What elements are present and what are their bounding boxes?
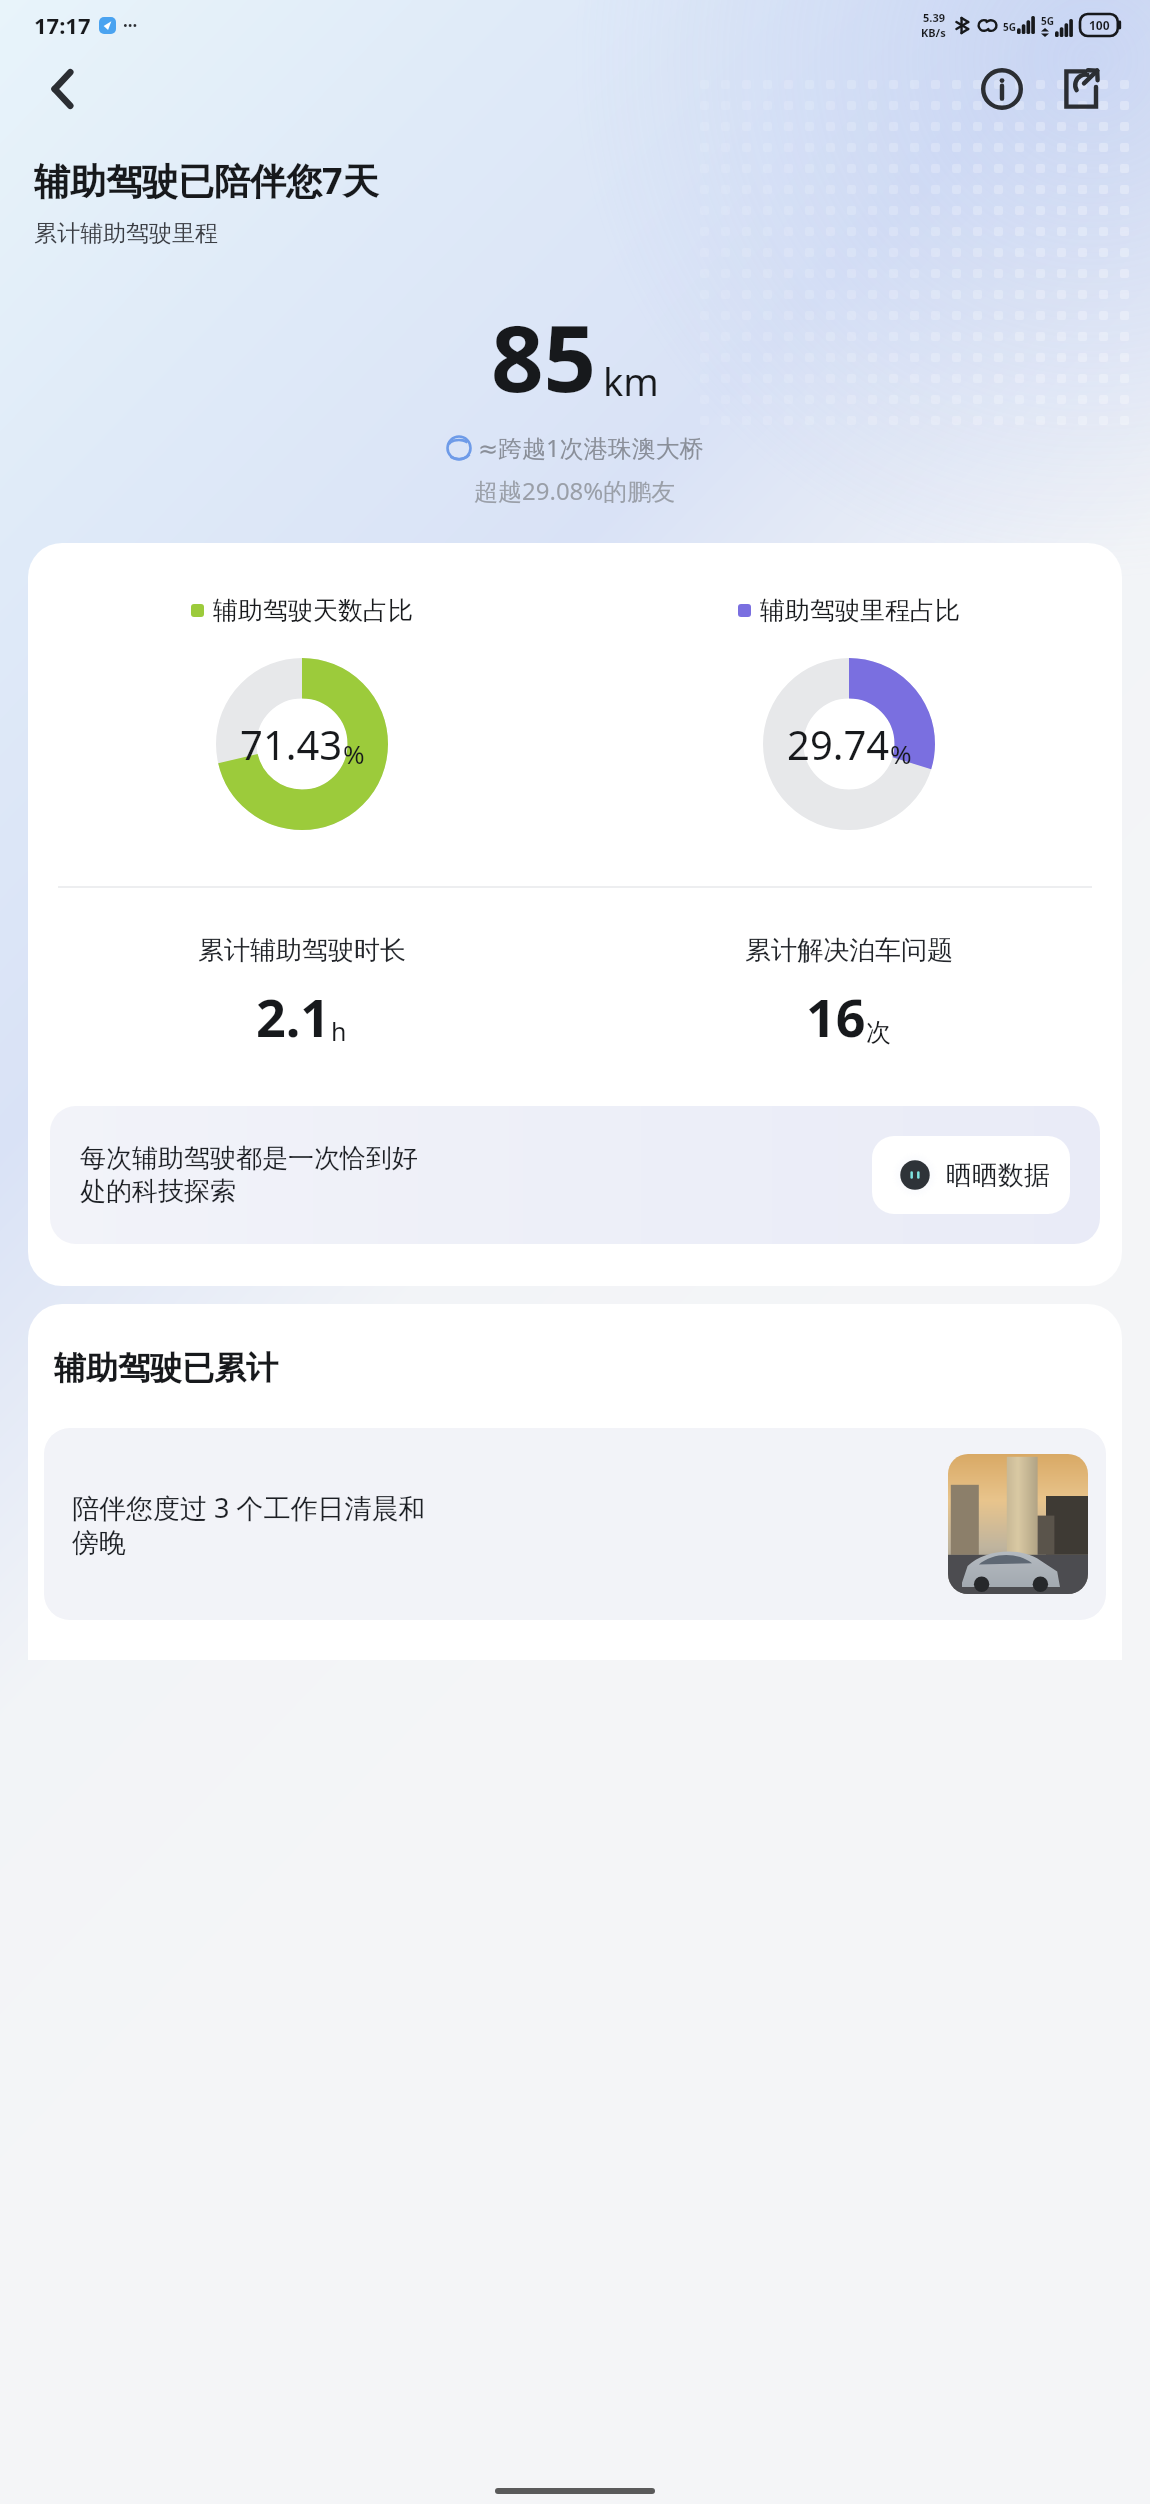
button[interactable]: Info [972, 59, 1032, 119]
staticText: 71.43 [240, 717, 343, 771]
button[interactable]: Share [1050, 59, 1110, 119]
staticText: 超越29.08%的鹏友 [474, 474, 676, 507]
staticText: 傍晚 [72, 1526, 126, 1560]
staticText: 29.74 [787, 717, 890, 771]
button[interactable]: 晒晒数据 [872, 1136, 1070, 1214]
staticText: 次 [866, 1017, 891, 1048]
staticText: 辅助驾驶里程占比 [760, 595, 960, 626]
staticText: 累计解决泊车问题 [745, 934, 953, 967]
staticText: 处的科技探索 [80, 1175, 236, 1208]
staticText: 辅助驾驶已陪伴您7天 [34, 156, 379, 205]
staticText: KB/s [921, 25, 946, 40]
staticText: 17:17 [34, 10, 91, 40]
staticText: 累计辅助驾驶里程 [34, 219, 218, 248]
staticText: ··· [123, 14, 138, 37]
staticText: % [343, 736, 365, 771]
staticText: % [890, 736, 912, 771]
staticText: 5.39 [923, 10, 945, 25]
staticText: ≈跨越1次港珠澳大桥 [478, 431, 704, 464]
staticText: 5G [1003, 20, 1016, 34]
staticText: h [331, 1014, 347, 1048]
staticText: 5G [1041, 14, 1054, 28]
staticText: 100 [1089, 17, 1110, 33]
staticText: km [603, 355, 659, 407]
staticText: 陪伴您度过 3 个工作日清晨和 [72, 1489, 426, 1526]
staticText: 辅助驾驶天数占比 [213, 595, 413, 626]
staticText: 每次辅助驾驶都是一次恰到好 [80, 1142, 418, 1175]
staticText: 辅助驾驶已累计 [54, 1348, 278, 1388]
staticText: 2.1 [256, 981, 331, 1052]
staticText: 16 [806, 981, 866, 1052]
staticText: 85 [491, 294, 597, 419]
button[interactable]: 陪伴您度过 3 个工作日清晨和 [44, 1428, 1106, 1620]
staticText: 晒晒数据 [946, 1159, 1050, 1192]
staticText: 累计辅助驾驶时长 [198, 934, 406, 967]
button[interactable]: Back [34, 60, 92, 118]
